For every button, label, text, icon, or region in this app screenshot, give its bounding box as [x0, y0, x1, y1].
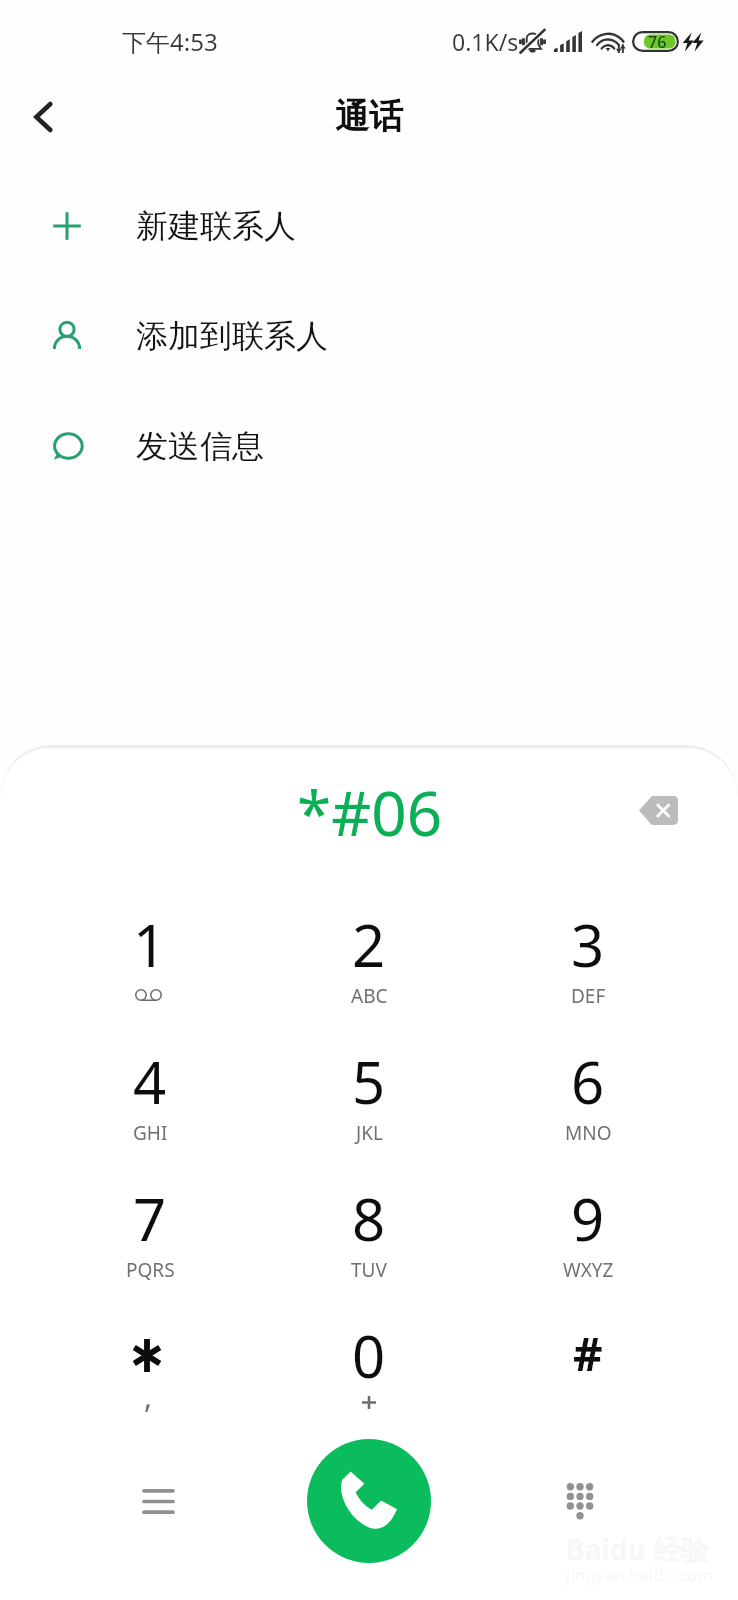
staticText: 6	[571, 1042, 605, 1121]
staticText: 通话	[335, 95, 403, 138]
button[interactable]: Key 9	[485, 1161, 691, 1291]
staticText: TUV	[351, 1257, 387, 1283]
button[interactable]: 发送信息	[0, 391, 738, 501]
button[interactable]: 新建联系人	[0, 171, 738, 281]
button[interactable]: Dialpad	[542, 1463, 618, 1539]
staticText: #	[573, 1322, 603, 1385]
button[interactable]: Key 5	[266, 1024, 472, 1154]
button[interactable]: Back	[8, 82, 78, 152]
staticText: 0.1K/s	[452, 26, 519, 57]
staticText: GHI	[133, 1120, 168, 1146]
staticText: DEF	[571, 983, 606, 1009]
button[interactable]: Menu	[120, 1463, 196, 1539]
staticText: *#06	[297, 770, 443, 854]
staticText: 2	[352, 905, 386, 984]
button[interactable]: Key 0	[266, 1298, 472, 1428]
button[interactable]: Key *	[47, 1298, 253, 1428]
staticText: 下午4:53	[122, 25, 218, 58]
button[interactable]: Key 6	[485, 1024, 691, 1154]
staticText: WXYZ	[563, 1257, 614, 1283]
button[interactable]: Key 4	[47, 1024, 253, 1154]
staticText: 76	[648, 31, 667, 52]
button[interactable]: Key 2	[266, 887, 472, 1017]
staticText: 3	[571, 905, 605, 984]
staticText: ,	[144, 1376, 153, 1417]
staticText: 添加到联系人	[136, 316, 328, 356]
staticText: 9	[571, 1179, 605, 1258]
button[interactable]: Call	[307, 1439, 431, 1563]
button[interactable]: 添加到联系人	[0, 281, 738, 391]
button[interactable]: Key 8	[266, 1161, 472, 1291]
staticText: ABC	[351, 983, 388, 1009]
staticText: 发送信息	[136, 426, 264, 466]
staticText: JKL	[356, 1120, 383, 1146]
button[interactable]: Key 1	[47, 887, 253, 1017]
button[interactable]: Key 3	[485, 887, 691, 1017]
staticText: 1	[133, 905, 167, 984]
staticText: 新建联系人	[136, 206, 296, 246]
staticText: 5	[352, 1042, 386, 1121]
staticText: 4	[133, 1042, 167, 1121]
button[interactable]: Delete	[627, 779, 689, 841]
staticText: 7	[133, 1179, 167, 1258]
button[interactable]: Key #	[485, 1298, 691, 1428]
staticText: 8	[352, 1179, 386, 1258]
staticText: Baidu 经验	[566, 1530, 709, 1568]
staticText: 0	[352, 1316, 386, 1395]
staticText: PQRS	[126, 1257, 175, 1283]
button[interactable]: Key 7	[47, 1161, 253, 1291]
staticText: MNO	[565, 1120, 612, 1146]
